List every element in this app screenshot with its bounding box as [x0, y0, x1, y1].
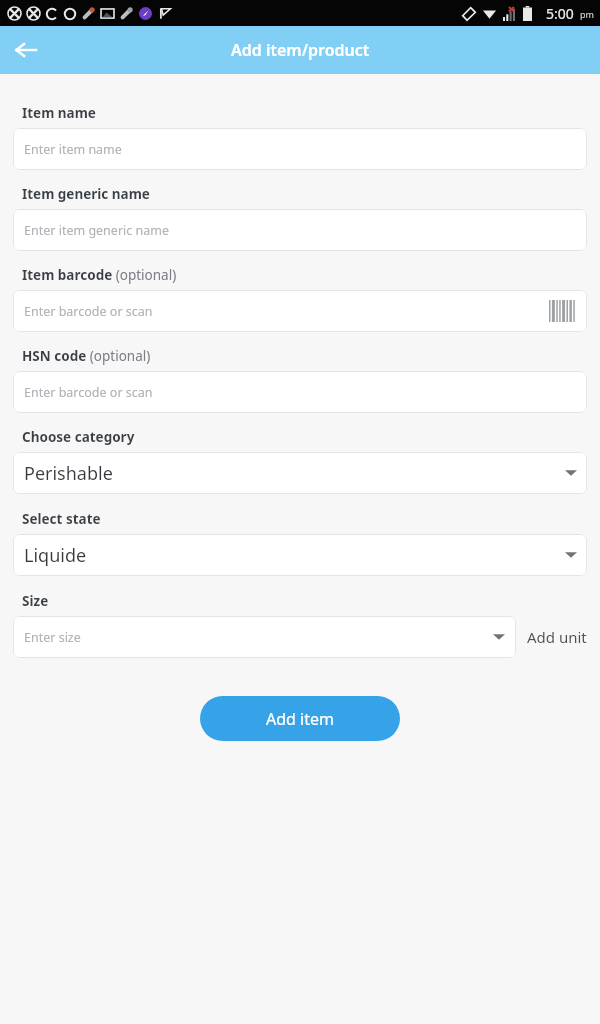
button[interactable]: Add unit — [527, 627, 587, 647]
staticText: Enter barcode or scan — [24, 384, 153, 401]
staticText: Item barcode (optional) — [22, 266, 177, 284]
button[interactable]: Enter barcode or scan — [13, 371, 587, 413]
button[interactable]: Enter item name — [13, 128, 587, 170]
staticText: Choose category — [22, 428, 135, 446]
staticText: Size — [22, 592, 49, 610]
staticText: Add item — [266, 708, 334, 730]
button[interactable]: Liquide — [13, 534, 587, 576]
staticText: Item generic name — [22, 185, 150, 203]
staticText: Select state — [22, 510, 101, 528]
staticText: Enter item name — [24, 141, 122, 158]
staticText: HSN code (optional) — [22, 347, 151, 365]
button[interactable]: Enter size — [13, 616, 516, 658]
staticText: Liquide — [24, 543, 87, 568]
button[interactable]: Back — [6, 30, 46, 70]
button[interactable]: Perishable — [13, 452, 587, 494]
staticText: Add item/product — [231, 39, 370, 61]
staticText: Perishable — [24, 461, 113, 486]
button[interactable]: Add item — [200, 696, 400, 741]
button[interactable]: Enter barcode or scan — [13, 290, 587, 332]
staticText: Enter size — [24, 629, 81, 646]
staticText: 5:00 — [546, 4, 574, 23]
staticText: Item name — [22, 104, 96, 122]
staticText: Add unit — [527, 627, 587, 647]
staticText: Enter barcode or scan — [24, 303, 153, 320]
staticText: Enter item generic name — [24, 222, 170, 239]
staticText: pm — [580, 8, 594, 20]
button[interactable]: Enter item generic name — [13, 209, 587, 251]
